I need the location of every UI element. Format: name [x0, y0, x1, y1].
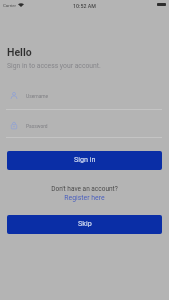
button[interactable]: Register here: [64, 194, 105, 202]
other: Password: [11, 122, 17, 129]
button[interactable]: Skip: [7, 215, 162, 234]
button[interactable]: Sign in: [7, 151, 162, 170]
staticText: Password: [26, 123, 48, 129]
staticText: 10:52 AM: [73, 3, 96, 9]
other: Battery: [157, 3, 166, 6]
staticText: Username: [26, 93, 49, 99]
staticText: Skip: [78, 219, 92, 227]
staticText: Don't have an account?: [0, 185, 169, 193]
other: Wi-Fi: [18, 3, 24, 7]
staticText: Hello: [7, 46, 32, 58]
staticText: Carrier: [3, 3, 17, 8]
other: Username: [11, 92, 17, 99]
staticText: Sign in to access your account.: [7, 62, 101, 70]
staticText: Sign in: [74, 155, 96, 163]
button[interactable]: Password: [0, 118, 169, 140]
button[interactable]: Username: [0, 88, 169, 110]
